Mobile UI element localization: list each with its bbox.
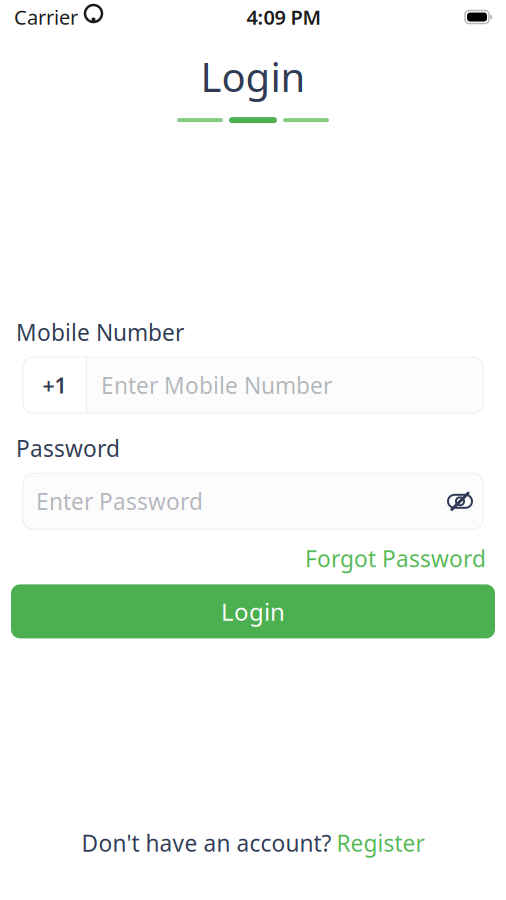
staticText: Login (200, 50, 305, 103)
staticText: Login (221, 595, 285, 627)
button[interactable]: Login (11, 584, 495, 638)
staticText: +1 (42, 371, 66, 399)
staticText: Forgot Password (305, 543, 486, 573)
staticText: Mobile Number (16, 317, 184, 347)
button[interactable]: Forgot Password (305, 543, 486, 573)
staticText: Enter Password (36, 486, 203, 516)
button[interactable]: Don't have an account? (81, 828, 424, 858)
staticText: Register (336, 828, 424, 858)
button[interactable]: Show password (437, 473, 483, 529)
staticText: 4:09 PM (246, 4, 321, 30)
staticText: Carrier (14, 4, 78, 30)
staticText: Enter Mobile Number (101, 370, 332, 400)
staticText: Password (16, 433, 120, 463)
staticText: Don't have an account? (81, 828, 331, 858)
